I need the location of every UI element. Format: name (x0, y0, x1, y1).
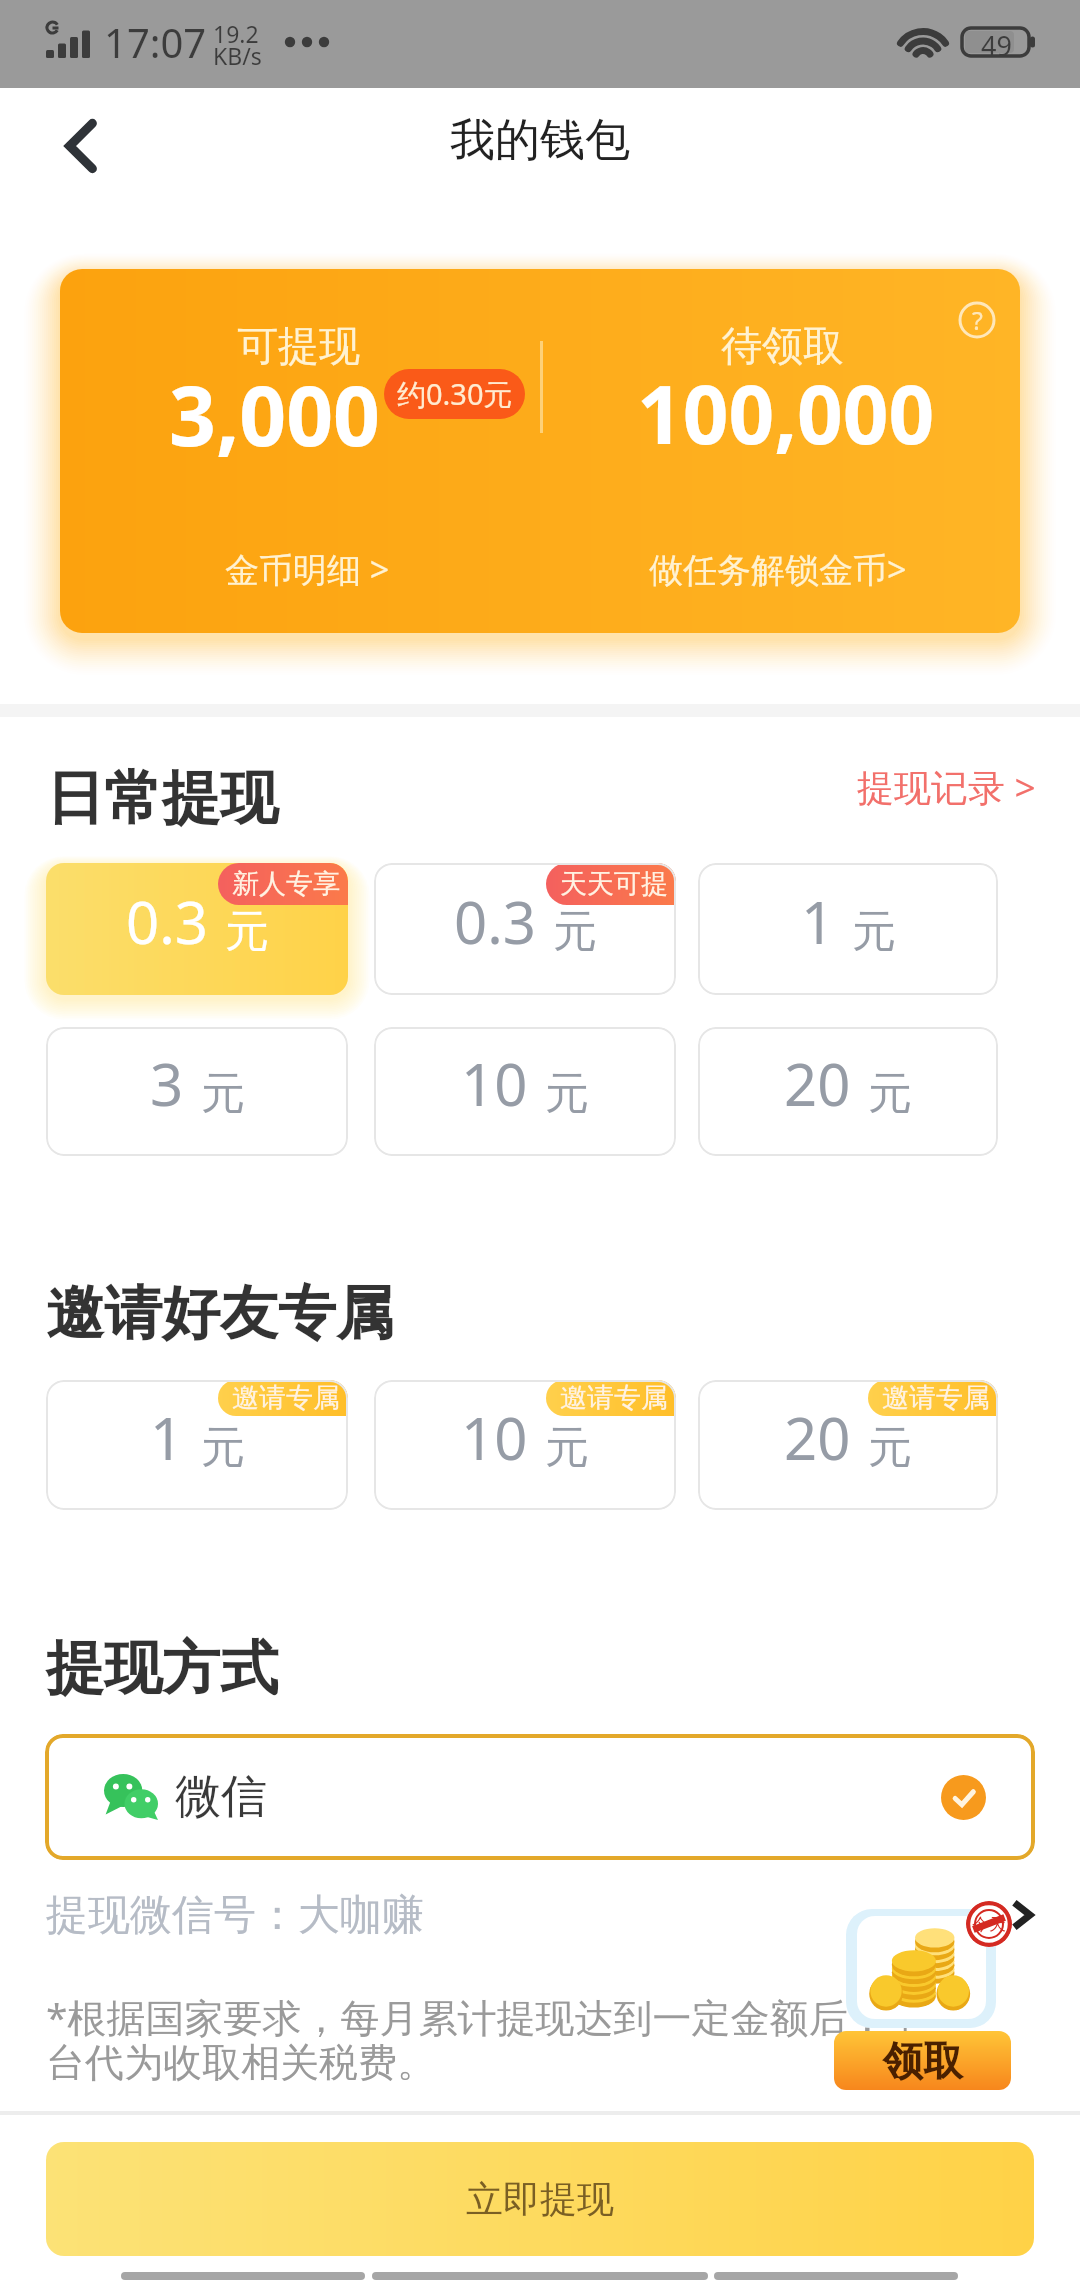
staticText: 微信 (175, 1768, 267, 1826)
staticText: 做任务解锁金币> (649, 546, 907, 592)
button[interactable]: 做任务解锁金币> (578, 538, 978, 600)
staticText: 10 (461, 1398, 528, 1477)
staticText: 元 (852, 904, 896, 959)
button[interactable]: Claim reward (834, 1900, 1034, 2092)
staticText: 元 (201, 1420, 245, 1475)
button[interactable]: 10 (374, 1380, 676, 1510)
button[interactable]: 金币明细 > (107, 538, 507, 600)
staticText: 元 (868, 1420, 912, 1475)
staticText: 元 (553, 904, 597, 959)
staticText: 邀请好友专属 (46, 1277, 394, 1350)
staticText: 1 (150, 1398, 184, 1477)
staticText: 0.3 (126, 882, 208, 961)
staticText: 约0.30元 (397, 374, 513, 414)
staticText: 待领取 (721, 321, 844, 373)
button[interactable]: 1 (698, 863, 998, 995)
staticText: 邀请专属 (882, 1381, 990, 1415)
staticText: 100,000 (637, 358, 935, 467)
staticText: 3,000 (169, 358, 380, 468)
staticText: KB/s (213, 40, 262, 71)
staticText: 19.2 (213, 18, 259, 49)
staticText: 天天可提 (560, 867, 668, 901)
staticText: 0.3 (454, 882, 536, 961)
staticText: 元 (225, 904, 269, 959)
staticText: 邀请专属 (232, 1381, 340, 1415)
staticText: 邀请专属 (560, 1381, 668, 1415)
staticText: 元 (201, 1066, 245, 1121)
staticText: ? (972, 303, 983, 337)
staticText: 元 (545, 1066, 589, 1121)
button[interactable]: Back (38, 104, 124, 188)
staticText: 可提现 (237, 321, 360, 373)
staticText: 49 (981, 27, 1012, 57)
button[interactable]: 20 (698, 1027, 998, 1156)
button[interactable]: 20 (698, 1380, 998, 1510)
staticText: 元 (868, 1066, 912, 1121)
staticText: 20 (784, 1398, 851, 1477)
button[interactable]: Help (958, 301, 996, 339)
button[interactable]: 提现记录 > (830, 755, 1036, 817)
staticText: 10 (461, 1044, 528, 1123)
staticText: 今天 (972, 1914, 1006, 1935)
staticText: 提现微信号：大咖赚 (46, 1889, 424, 1942)
staticText: 金币明细 > (225, 546, 390, 592)
staticText: 提现记录 > (857, 761, 1036, 812)
staticText: 新人专享 (232, 867, 340, 901)
staticText: 我的钱包 (450, 112, 630, 169)
staticText: 元 (545, 1420, 589, 1475)
staticText: 提现方式 (46, 1632, 278, 1705)
button[interactable]: 10 (374, 1027, 676, 1156)
button[interactable]: 0.3 (374, 863, 676, 995)
staticText: *根据国家要求，每月累计提现达到一定金额后，平 台代为收取相关税费。 (46, 1990, 926, 2087)
button[interactable]: 1 (46, 1380, 348, 1510)
staticText: 1 (801, 882, 835, 961)
staticText: 3 (150, 1044, 184, 1123)
staticText: 日常提现 (46, 762, 278, 835)
button[interactable]: 立即提现 (46, 2142, 1034, 2256)
staticText: 领取 (883, 2036, 963, 2086)
button[interactable]: 3 (46, 1027, 348, 1156)
staticText: 立即提现 (466, 2176, 614, 2223)
staticText: 20 (784, 1044, 851, 1123)
button[interactable]: Help (60, 269, 1020, 633)
button[interactable]: 微信 (45, 1734, 1035, 1860)
button[interactable]: 0.3 (46, 863, 348, 995)
staticText: 17:07 (104, 15, 207, 69)
